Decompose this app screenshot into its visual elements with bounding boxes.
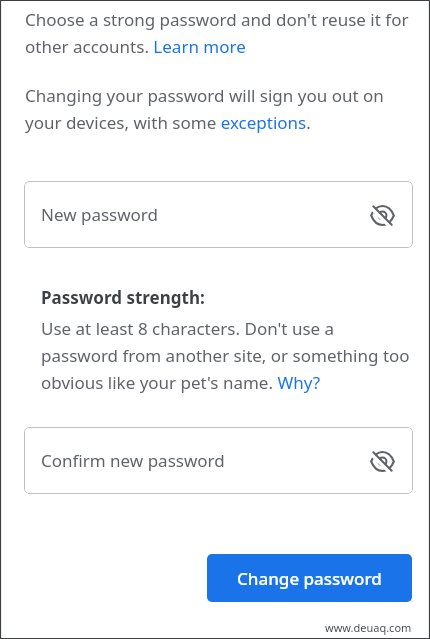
button[interactable]: Confirm new password: [24, 427, 413, 494]
staticText: www.deuaq.com: [325, 620, 412, 635]
button[interactable]: Change password: [207, 554, 412, 602]
button[interactable]: Choose a strong password and don't reuse…: [25, 8, 412, 58]
button[interactable]: Show password: [364, 443, 400, 479]
staticText: Confirm new password: [41, 449, 225, 472]
button[interactable]: Changing your password will sign you out…: [25, 84, 412, 134]
staticText: New password: [41, 203, 159, 226]
button[interactable]: Use at least 8 characters. Don't use a p…: [41, 317, 412, 394]
staticText: Change password: [237, 567, 382, 590]
button[interactable]: New password: [24, 181, 413, 248]
button[interactable]: Show password: [364, 197, 400, 233]
staticText: Password strength:: [41, 286, 205, 309]
